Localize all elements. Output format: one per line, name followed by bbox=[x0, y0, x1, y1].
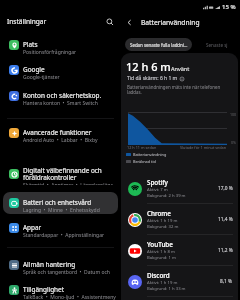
staticText: Tid då skärm: 6 h 1 m bbox=[127, 75, 178, 82]
staticText: Sedan senaste fulla laddni... bbox=[130, 42, 188, 48]
staticText: Skärmtid • Apptimer • Läggdagsläge bbox=[23, 182, 114, 185]
staticText: Bakgrund: 2 h 39 m bbox=[147, 193, 186, 199]
staticText: 11,2 % bbox=[218, 247, 233, 254]
staticText: Aktivt: 7 m bbox=[147, 187, 168, 193]
button[interactable]: Batteri och enhetsvård bbox=[3, 192, 118, 214]
button[interactable]: Avancerade funktioner bbox=[3, 122, 118, 144]
staticText: Standardappar • Appinställningar bbox=[23, 232, 104, 239]
staticText: 15 % bbox=[222, 3, 236, 11]
button[interactable]: Google bbox=[3, 59, 118, 81]
staticText: Batteri och enhetsvård bbox=[23, 198, 92, 207]
staticText: 12 h 6 m bbox=[126, 59, 171, 74]
staticText: Batterianvändning bbox=[133, 152, 167, 157]
staticText: Google-tjänster bbox=[23, 74, 60, 81]
staticText: 17,0 % bbox=[218, 185, 233, 192]
button[interactable]: Plats bbox=[3, 34, 118, 56]
button[interactable]: Digitalt välbefinnande och föräldrakontr… bbox=[3, 163, 118, 185]
staticText: Chrome bbox=[147, 209, 171, 218]
staticText: Spotify bbox=[147, 178, 168, 187]
staticText: Lagring • Minne • Enhetsskydd bbox=[23, 207, 100, 214]
button[interactable]: Search bbox=[103, 15, 116, 28]
staticText: Senaste sj bbox=[206, 42, 228, 48]
staticText: Inställningar bbox=[7, 17, 47, 26]
staticText: Digitalt välbefinnande och föräldrakontr… bbox=[23, 166, 102, 182]
staticText: Hantera konton • Smart Switch bbox=[23, 100, 98, 107]
staticText: Använt bbox=[171, 65, 190, 72]
button[interactable]: Tillgänglighet bbox=[3, 279, 118, 300]
button[interactable]: Konton och säkerhetskop. bbox=[3, 85, 118, 107]
staticText: Google bbox=[23, 65, 45, 74]
staticText: Beräknad tid bbox=[133, 159, 156, 164]
staticText: Appar bbox=[23, 223, 42, 232]
staticText: Konton och säkerhetskop. bbox=[23, 91, 102, 100]
staticText: Tillgänglighet bbox=[23, 285, 64, 294]
staticText: Discord bbox=[147, 271, 170, 280]
staticText: Aktivt: 1 h 8 m bbox=[147, 249, 175, 255]
staticText: 8,1 % bbox=[220, 278, 233, 285]
staticText: Batterianvändning bbox=[141, 18, 200, 27]
staticText: Aktivt: 1 h 19 m bbox=[147, 218, 178, 224]
button[interactable]: Appar bbox=[3, 217, 118, 239]
staticText: 12 h 11 m sedan bbox=[127, 145, 157, 150]
staticText: 11,4 % bbox=[218, 216, 233, 223]
staticText: YouTube bbox=[147, 240, 173, 249]
button[interactable]: Chrome bbox=[121, 204, 238, 235]
staticText: Positionsförfrågningar bbox=[23, 49, 77, 56]
staticText: Bakgrund: 1 h 33 m bbox=[147, 286, 186, 292]
staticText: Plats bbox=[23, 40, 38, 49]
staticText: 0% bbox=[231, 140, 237, 145]
staticText: 100 bbox=[230, 112, 237, 117]
staticText: Android Auto • Labbar • Bixby Routines bbox=[23, 137, 116, 144]
staticText: Språk och tangentbord • Datum och tid bbox=[23, 269, 116, 276]
button[interactable]: Allmän hantering bbox=[3, 254, 118, 276]
button[interactable]: Senaste sj bbox=[204, 40, 230, 50]
staticText: Avancerade funktioner bbox=[23, 128, 92, 137]
button[interactable]: Sedan senaste fulla laddni... bbox=[125, 38, 192, 51]
button[interactable]: Back bbox=[123, 16, 136, 29]
button[interactable]: Spotify bbox=[121, 173, 238, 204]
staticText: Slutade för 1 minut sedan bbox=[180, 145, 227, 150]
staticText: Batterianvändningen mäts inte när telefo… bbox=[127, 84, 221, 95]
staticText: Allmän hantering bbox=[23, 260, 76, 269]
staticText: Bakgrund: 1 m bbox=[147, 255, 176, 261]
button[interactable]: YouTube bbox=[121, 235, 238, 266]
staticText: Bakgrund: 32 m bbox=[147, 224, 179, 230]
staticText: Aktivt: 1 h 19 m bbox=[147, 280, 178, 286]
button[interactable]: Discord bbox=[121, 266, 238, 297]
staticText: TalkBack • Mono-ljud • Assistentmeny bbox=[23, 294, 116, 300]
